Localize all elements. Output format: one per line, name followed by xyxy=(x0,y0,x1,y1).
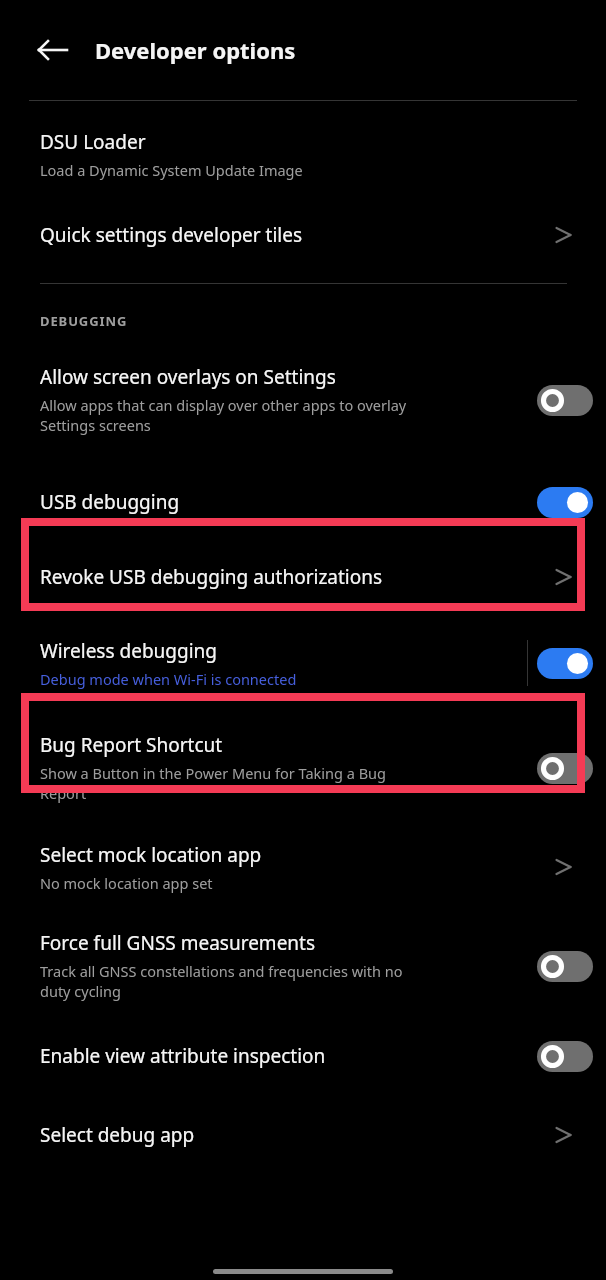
staticText: Quick settings developer tiles xyxy=(40,222,303,248)
staticText: Developer options xyxy=(95,35,296,65)
button[interactable]: DSU Loader xyxy=(0,121,606,187)
button[interactable]: Wireless debugging xyxy=(0,620,606,706)
staticText: Select debug app xyxy=(40,1122,195,1148)
staticText: Show a Button in the Power Menu for Taki… xyxy=(40,763,386,804)
staticText: Allow apps that can display over other a… xyxy=(40,395,407,436)
staticText: Allow screen overlays on Settings xyxy=(40,364,336,390)
button[interactable]: Revoke USB debugging authorizations xyxy=(0,550,606,604)
button[interactable]: Bug Report Shortcut xyxy=(0,722,606,814)
button[interactable]: Select debug app xyxy=(0,1108,606,1162)
button[interactable]: Allow screen overlays on Settings xyxy=(0,354,606,446)
staticText: Force full GNSS measurements xyxy=(40,930,316,956)
button[interactable]: Select mock location app xyxy=(0,832,606,902)
staticText: Select mock location app xyxy=(40,842,262,868)
staticText: Revoke USB debugging authorizations xyxy=(40,564,383,590)
button[interactable]: Force full GNSS measurements xyxy=(0,920,606,1012)
staticText: Enable view attribute inspection xyxy=(40,1043,326,1069)
button[interactable]: Back xyxy=(28,25,78,75)
staticText: No mock location app set xyxy=(40,873,213,893)
staticText: USB debugging xyxy=(40,489,180,515)
button[interactable]: Enable view attribute inspection xyxy=(0,1028,606,1084)
staticText: DEBUGGING xyxy=(40,312,128,330)
staticText: Load a Dynamic System Update Image xyxy=(40,160,303,180)
staticText: Debug mode when Wi-Fi is connected xyxy=(40,669,297,689)
staticText: Track all GNSS constellations and freque… xyxy=(40,961,403,1002)
staticText: DSU Loader xyxy=(40,129,146,155)
button[interactable]: USB debugging xyxy=(0,460,606,544)
staticText: Bug Report Shortcut xyxy=(40,732,223,758)
button[interactable]: Quick settings developer tiles xyxy=(0,209,606,261)
staticText: Wireless debugging xyxy=(40,638,218,664)
